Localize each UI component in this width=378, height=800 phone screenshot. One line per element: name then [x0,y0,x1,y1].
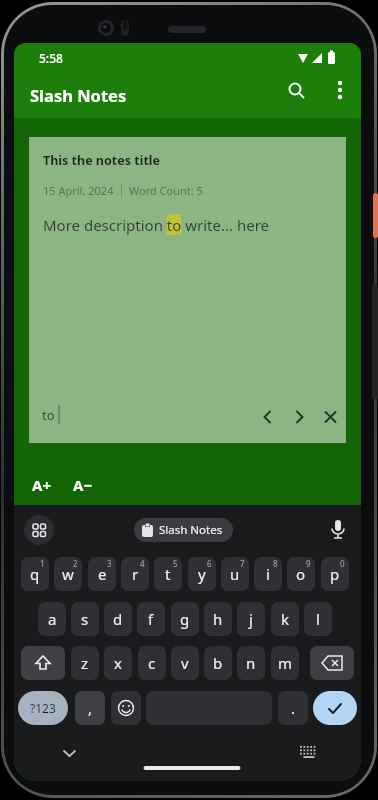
button[interactable]: f [137,602,165,636]
button[interactable]: s [71,602,99,636]
staticText: ?123 [30,700,56,716]
button[interactable]: h [204,602,232,636]
button[interactable]: , [75,691,105,725]
staticText: r [132,564,139,584]
staticText: n [246,653,256,673]
button[interactable] [324,515,352,543]
staticText: to [42,406,55,424]
staticText: More description to write... here [43,215,269,235]
button[interactable]: u [221,557,249,591]
staticText: y [198,564,206,584]
staticText: b [213,653,223,673]
staticText: p [330,564,340,584]
button[interactable]: a [38,602,66,636]
button[interactable]: ?123 [18,691,68,725]
staticText: This the notes title [43,152,160,169]
staticText: Slash Notes [30,84,127,106]
staticText: h [213,609,223,629]
staticText: l [316,609,320,629]
staticText: d [113,609,123,629]
button[interactable]: r [121,557,149,591]
staticText: 15 April, 2024 [43,183,114,198]
button[interactable]: d [104,602,132,636]
staticText: e [98,564,107,584]
staticText: u [230,564,240,584]
staticText: Slash Notes [159,522,223,538]
button[interactable]: w [54,557,82,591]
staticText: 0 [340,558,345,569]
button[interactable]: q [21,557,49,591]
button[interactable]: A+ [32,475,51,495]
staticText: q [30,564,40,584]
staticText: f [148,609,154,629]
staticText: 1 [40,558,45,569]
staticText: c [148,653,156,673]
staticText: 3 [107,558,112,569]
button[interactable]: x [104,646,132,680]
staticText: z [81,653,89,673]
button[interactable]: y [188,557,216,591]
button[interactable]: j [237,602,265,636]
staticText: 4 [140,558,145,569]
button[interactable]: Slash Notes [142,518,223,542]
button[interactable] [313,691,357,725]
button[interactable] [328,76,352,104]
staticText: x [114,653,122,673]
button[interactable] [24,515,54,545]
button[interactable]: b [204,646,232,680]
staticText: i [266,564,270,584]
button[interactable]: A− [73,475,93,495]
staticText: 5:58 [39,50,63,66]
staticText: m [278,653,293,673]
staticText: 5 [173,558,178,569]
button[interactable]: v [171,646,199,680]
staticText: Word Count: 5 [129,183,203,198]
staticText: 2 [73,558,78,569]
button[interactable] [21,646,65,680]
staticText: t [165,564,171,584]
staticText: 7 [240,558,245,569]
button[interactable] [310,646,354,680]
staticText: o [296,564,306,584]
button[interactable] [282,76,310,104]
staticText: w [62,564,74,584]
button[interactable]: m [271,646,299,680]
button[interactable]: o [287,557,315,591]
staticText: s [81,609,89,629]
staticText: j [249,609,253,629]
staticText: 9 [306,558,311,569]
staticText: g [180,609,190,629]
button[interactable]: g [171,602,199,636]
button[interactable]: k [271,602,299,636]
button[interactable]: p [321,557,349,591]
button[interactable]: c [138,646,166,680]
staticText: , [88,698,93,718]
button[interactable] [111,691,141,725]
button[interactable]: l [304,602,332,636]
button[interactable]: n [237,646,265,680]
button[interactable]: This the notes title [29,137,346,443]
button[interactable]: t [154,557,182,591]
button[interactable]: i [254,557,282,591]
staticText: . [291,698,296,718]
staticText: 6 [207,558,212,569]
button[interactable]: e [88,557,116,591]
staticText: 8 [273,558,278,569]
button[interactable]: . [278,691,308,725]
button[interactable]: z [71,646,99,680]
staticText: a [48,609,57,629]
staticText: v [181,653,189,673]
staticText: k [281,609,290,629]
